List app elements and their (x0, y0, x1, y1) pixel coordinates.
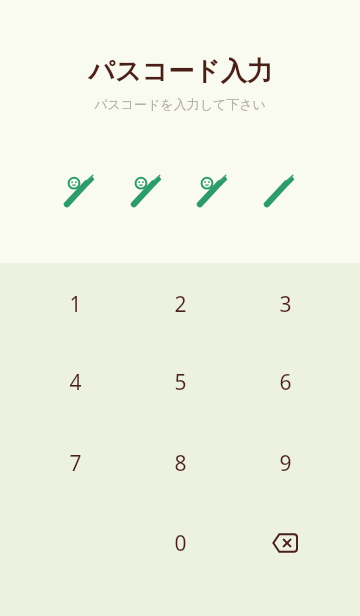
button[interactable]: Delete (240, 510, 330, 576)
button[interactable]: 8 (135, 430, 225, 496)
button[interactable]: 9 (240, 430, 330, 496)
staticText: パスコード入力 (88, 55, 273, 88)
button[interactable]: 7 (30, 430, 120, 496)
staticText: 1 (69, 290, 82, 319)
button[interactable]: 1 (30, 271, 120, 337)
staticText: 4 (69, 368, 82, 397)
staticText: 0 (174, 529, 187, 558)
button[interactable]: 2 (135, 271, 225, 337)
staticText: 2 (174, 290, 187, 319)
staticText: 3 (279, 290, 292, 319)
staticText: 6 (279, 368, 292, 397)
staticText: パスコードを入力して下さい (94, 96, 266, 112)
staticText: 9 (279, 449, 292, 478)
staticText: 7 (69, 449, 82, 478)
staticText: 8 (174, 449, 187, 478)
button[interactable]: 4 (30, 349, 120, 415)
button[interactable]: 6 (240, 349, 330, 415)
button[interactable]: 5 (135, 349, 225, 415)
staticText: 5 (174, 368, 187, 397)
button[interactable]: 0 (135, 510, 225, 576)
button[interactable]: 3 (240, 271, 330, 337)
